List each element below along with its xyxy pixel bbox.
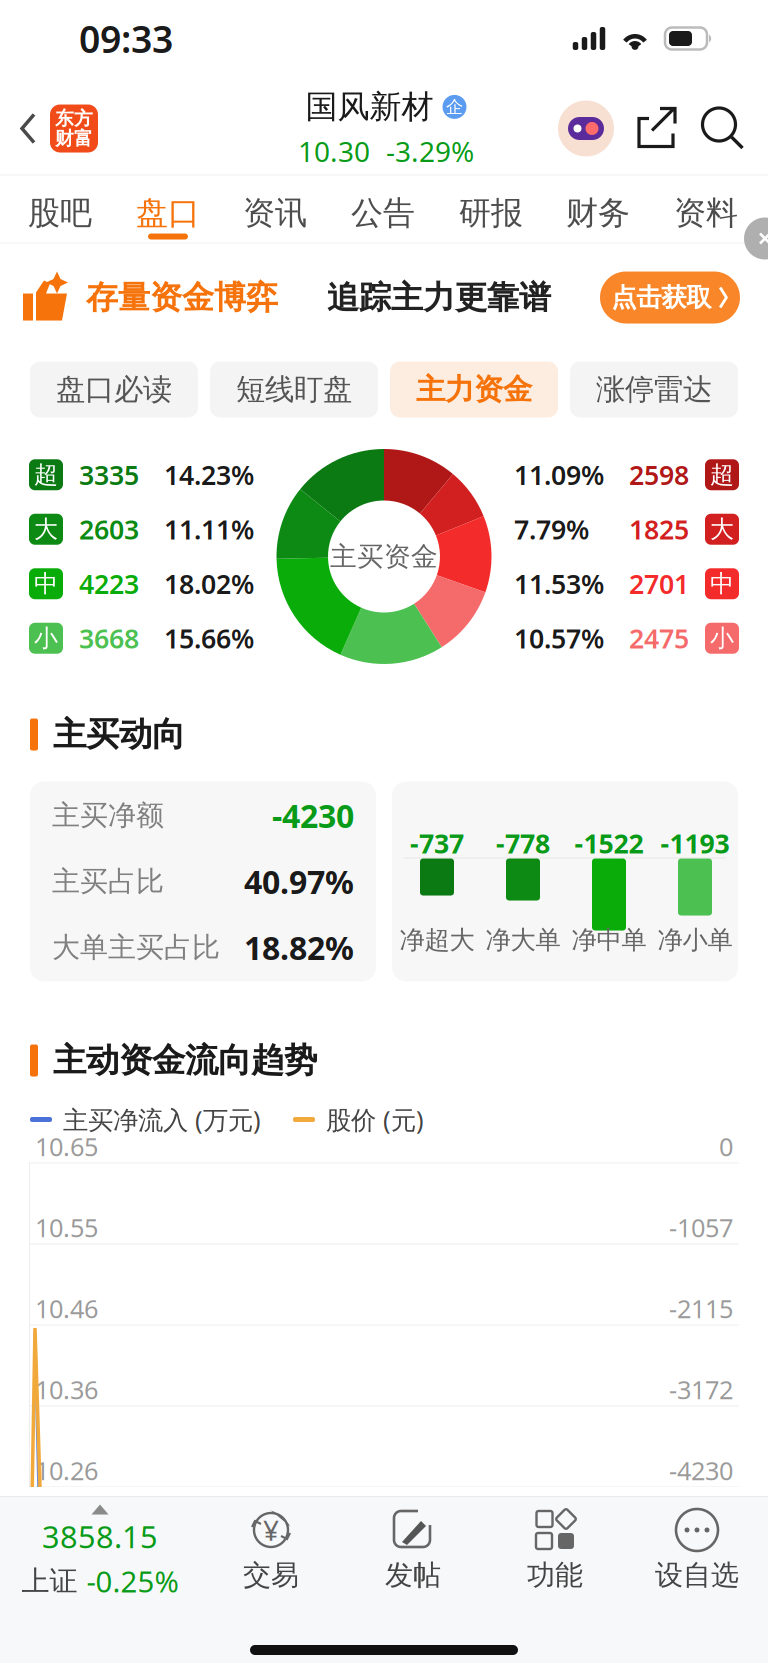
button[interactable]: 资料 (656, 175, 756, 242)
staticText: 盘口必读 (56, 371, 172, 407)
staticText: 企 (446, 96, 463, 118)
staticText: 10.55 (35, 1210, 98, 1244)
button[interactable]: 短线盯盘 (210, 361, 378, 417)
staticText: 存量资金博弈 (86, 278, 278, 317)
staticText: 研报 (459, 193, 523, 233)
button[interactable]: 盘口必读 (30, 361, 198, 417)
staticText: 1825 (629, 511, 689, 547)
staticText: 中 (34, 569, 58, 598)
staticText: 小 (34, 623, 58, 653)
staticText: 净超大 (399, 924, 474, 955)
staticText: 11.09% (514, 457, 604, 492)
button[interactable]: Close (744, 217, 768, 259)
button[interactable]: 东方 (0, 82, 108, 174)
staticText: -1057 (669, 1210, 733, 1244)
staticText: 2475 (629, 620, 689, 656)
staticText: -4230 (669, 1453, 733, 1487)
staticText: -778 (496, 825, 550, 861)
staticText: 10.46 (35, 1291, 98, 1325)
button[interactable]: 点击获取 (600, 271, 740, 323)
staticText: -1522 (574, 825, 643, 861)
staticText: 3668 (79, 620, 139, 656)
staticText: ¥ (263, 1511, 279, 1549)
staticText: 交易 (243, 1558, 299, 1592)
staticText: 0 (719, 1129, 733, 1163)
staticText: 主买净额 (52, 798, 164, 833)
staticText: 超 (710, 460, 734, 489)
staticText: 大单主买占比 (52, 930, 220, 965)
staticText: 点击获取 (611, 282, 711, 313)
staticText: 主买净流入 (万元) (63, 1103, 261, 1136)
staticText: 2603 (79, 511, 139, 547)
staticText: 主买资金 (330, 540, 438, 573)
staticText: 股价 (元) (326, 1103, 424, 1136)
staticText: 公告 (351, 193, 415, 233)
staticText: 财富 (55, 127, 93, 150)
staticText: 中 (710, 569, 734, 598)
staticText: -0.25% (86, 1562, 178, 1601)
button[interactable]: Share (634, 104, 680, 152)
staticText: 11.11% (164, 511, 254, 547)
staticText: 主买占比 (52, 864, 164, 899)
staticText: 3858.15 (42, 1516, 158, 1557)
staticText: 短线盯盘 (236, 371, 352, 407)
button[interactable]: 设自选 (626, 1497, 768, 1615)
staticText: 追踪主力更靠谱 (327, 278, 551, 317)
staticText: 净中单 (571, 924, 646, 955)
staticText: 18.82% (244, 926, 354, 969)
button[interactable]: 主力资金 (390, 361, 558, 417)
button[interactable]: 研报 (441, 175, 541, 242)
staticText: 10.30 (298, 133, 370, 170)
button[interactable]: 3858.15 (0, 1497, 200, 1615)
staticText: 18.02% (164, 566, 254, 601)
staticText: 2598 (629, 457, 689, 492)
staticText: -3.29% (386, 133, 474, 170)
staticText: 东方 (55, 107, 93, 130)
staticText: 净小单 (657, 924, 732, 955)
staticText: 主买动向 (53, 714, 185, 755)
button[interactable]: 涨停雷达 (570, 361, 738, 417)
staticText: 上证 (21, 1564, 77, 1598)
staticText: 发帖 (385, 1558, 441, 1592)
staticText: 股吧 (28, 193, 92, 233)
button[interactable]: Search (700, 105, 746, 151)
button[interactable]: 功能 (484, 1497, 626, 1615)
button[interactable]: 股吧 (10, 175, 110, 242)
staticText: 大 (34, 514, 58, 544)
staticText: -1193 (660, 825, 729, 861)
staticText: 4223 (79, 566, 139, 601)
staticText: 10.36 (35, 1372, 98, 1406)
staticText: 净大单 (485, 924, 560, 955)
button[interactable]: 资讯 (225, 175, 325, 242)
button[interactable]: 财务 (548, 175, 648, 242)
button[interactable]: 发帖 (342, 1497, 484, 1615)
button[interactable]: 盘口 (118, 175, 218, 242)
staticText: 10.26 (35, 1453, 98, 1487)
staticText: -4230 (272, 794, 354, 837)
staticText: 超 (34, 460, 58, 489)
staticText: 国风新材 (305, 87, 433, 127)
staticText: 2701 (629, 566, 689, 601)
staticText: 盘口 (136, 193, 200, 233)
staticText: 7.79% (514, 511, 589, 547)
staticText: 11.53% (514, 566, 604, 601)
button[interactable]: 公告 (333, 175, 433, 242)
staticText: -2115 (669, 1291, 733, 1325)
button[interactable]: AI assistant (558, 100, 614, 156)
staticText: 资料 (674, 193, 738, 233)
staticText: 10.57% (514, 620, 604, 656)
staticText: 资讯 (243, 193, 307, 233)
staticText: 财务 (566, 193, 630, 233)
staticText: -3172 (669, 1372, 733, 1406)
staticText: 09:33 (79, 14, 173, 63)
staticText: 设自选 (655, 1558, 739, 1592)
staticText: 小 (710, 623, 734, 653)
staticText: 15.66% (164, 620, 254, 656)
staticText: 涨停雷达 (596, 371, 712, 407)
button[interactable]: ¥ (200, 1497, 342, 1615)
staticText: 3335 (79, 457, 139, 492)
staticText: 主动资金流向趋势 (53, 1040, 317, 1081)
staticText: 功能 (527, 1558, 583, 1592)
staticText: -737 (410, 825, 464, 861)
staticText: 大 (710, 514, 734, 544)
